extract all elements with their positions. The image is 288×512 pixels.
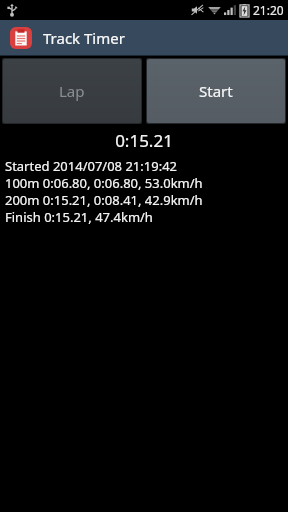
staticText: Started 2014/07/08 21:19:42: [5, 157, 178, 174]
staticText: Start: [199, 81, 233, 101]
staticText: Lap: [59, 81, 85, 101]
button[interactable]: Start: [147, 59, 285, 123]
staticText: 100m 0:06.80, 0:06.80, 53.0km/h: [5, 174, 203, 191]
staticText: 200m 0:15.21, 0:08.41, 42.9km/h: [5, 191, 203, 208]
staticText: Track Timer: [43, 28, 125, 48]
button[interactable]: Track Timer: [0, 20, 288, 55]
staticText: Finish 0:15.21, 47.4km/h: [5, 208, 153, 225]
staticText: 0:15.21: [115, 129, 173, 152]
button[interactable]: Lap: [3, 59, 141, 123]
staticText: 21:20: [253, 2, 284, 18]
